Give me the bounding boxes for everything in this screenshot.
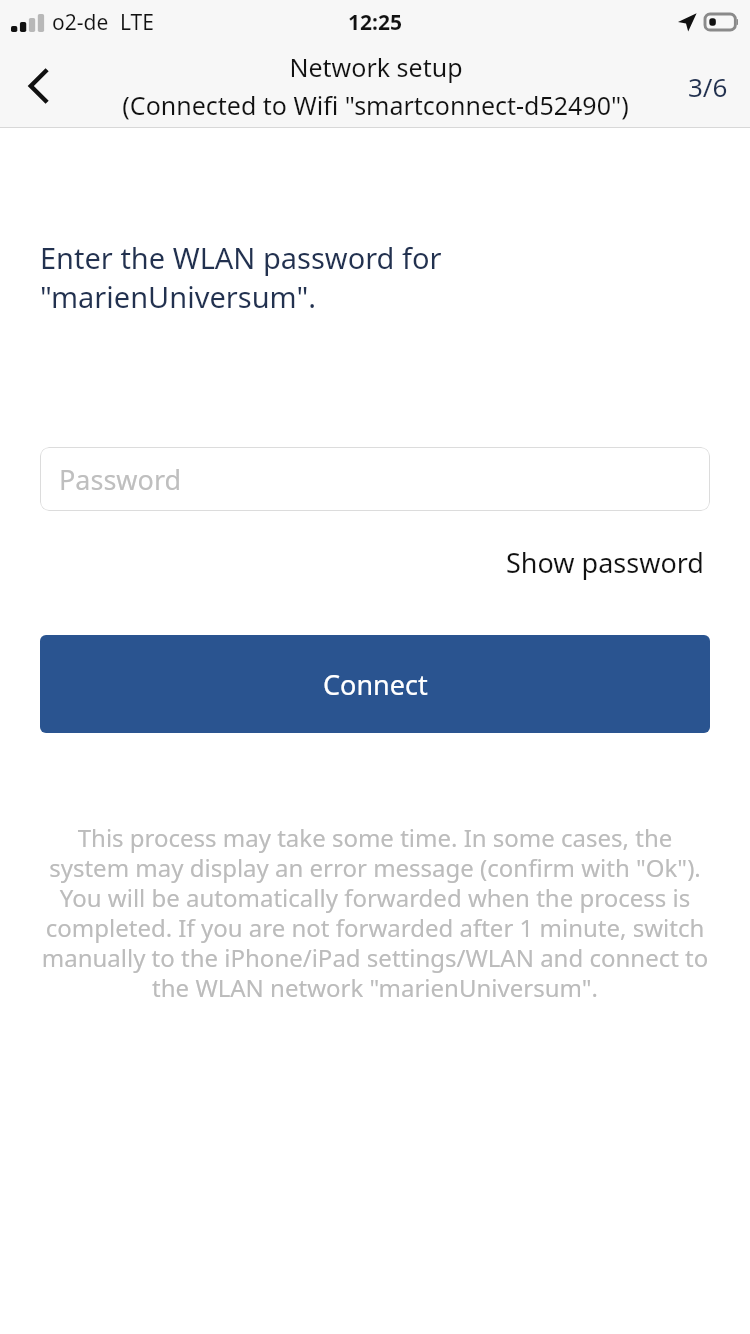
staticText: LTE [120,8,154,37]
staticText: o2-de [52,8,109,37]
button[interactable]: 3/6 [680,61,736,112]
button[interactable]: Show password [500,538,710,587]
button[interactable]: Back [0,44,76,128]
staticText: This process may take some time. In some… [40,821,710,1004]
staticText: Connect [323,666,428,703]
staticText: 12:25 [348,8,402,37]
staticText: (Connected to Wifi "smartconnect-d52490"… [122,88,629,122]
staticText: 3/6 [688,69,728,104]
staticText: Show password [506,544,704,581]
staticText: Network setup [289,50,463,84]
button[interactable]: Password [40,447,710,511]
button[interactable]: Connect [40,635,710,733]
staticText: Enter the WLAN password for "marienUnive… [40,238,710,316]
staticText: Password [59,461,182,498]
